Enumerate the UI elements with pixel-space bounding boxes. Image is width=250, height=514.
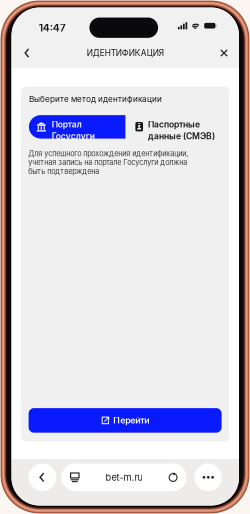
staticText: данные (СМЭВ): [148, 131, 215, 141]
staticText: Портал: [52, 119, 82, 130]
staticText: 14:47: [39, 21, 66, 34]
button[interactable]: Back: [14, 38, 40, 68]
button[interactable]: Back: [29, 463, 56, 491]
staticText: Паспортные: [148, 119, 200, 130]
button[interactable]: Перейти: [29, 408, 222, 433]
staticText: ИДЕНТИФИКАЦИЯ: [87, 48, 164, 58]
staticText: Госуслуги: [52, 131, 95, 141]
button[interactable]: Close: [211, 38, 237, 68]
button[interactable]: bet-m.ru: [61, 463, 186, 491]
staticText: bet-m.ru: [105, 472, 142, 483]
staticText: Выберите метод идентификации: [29, 94, 162, 104]
staticText: Для успешного прохождения идентификации,…: [28, 149, 188, 176]
button[interactable]: More: [194, 463, 222, 491]
staticText: Перейти: [113, 415, 149, 426]
